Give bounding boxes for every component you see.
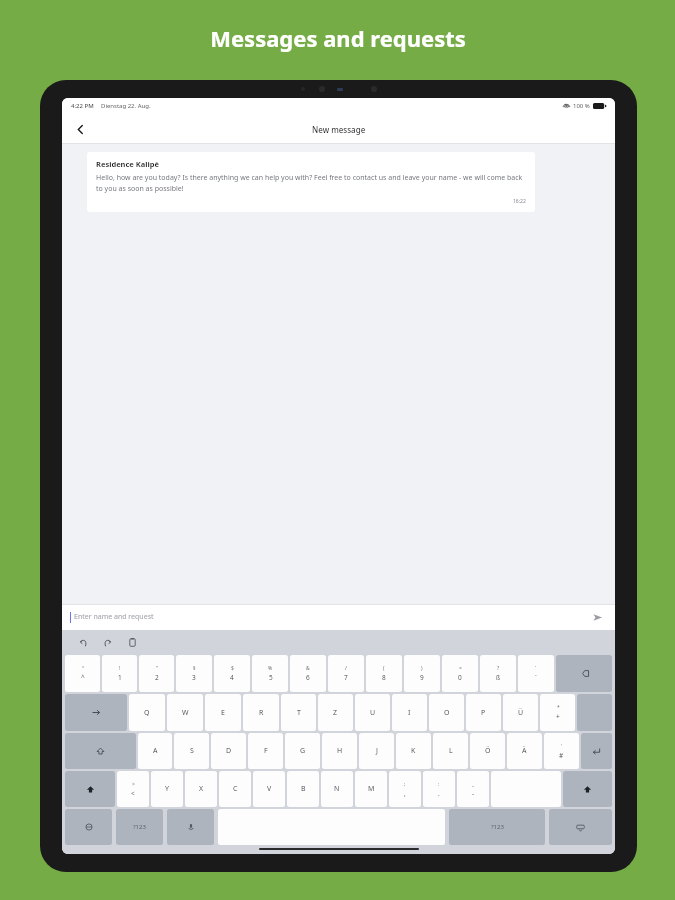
button[interactable]: ° [65, 655, 100, 692]
button[interactable]: ` [518, 655, 554, 692]
staticText: < [131, 789, 135, 798]
button[interactable]: V [253, 771, 285, 807]
button[interactable]: : [423, 771, 455, 807]
button[interactable]: Send [587, 607, 607, 627]
button[interactable]: = [442, 655, 478, 692]
staticText: 1 [118, 673, 122, 682]
button[interactable]: ( [366, 655, 402, 692]
button[interactable]: Caps lock [65, 733, 136, 769]
staticText: 6 [306, 673, 310, 682]
button[interactable]: * [540, 694, 575, 731]
button[interactable]: ?123 [116, 809, 163, 845]
button[interactable]: ? [480, 655, 516, 692]
button[interactable]: Q [129, 694, 165, 731]
staticText: Residence Kalipè [96, 159, 159, 169]
staticText: ' [561, 743, 563, 750]
staticText: K [411, 746, 416, 756]
staticText: . [438, 789, 440, 798]
button[interactable]: ! [102, 655, 137, 692]
button[interactable]: Back [68, 117, 92, 141]
button[interactable]: I [392, 694, 427, 731]
staticText: > [132, 781, 135, 788]
staticText: Y [165, 784, 169, 794]
staticText: J [376, 746, 378, 756]
staticText: $ [231, 665, 234, 672]
staticText: B [301, 784, 306, 794]
button[interactable]: F [248, 733, 283, 769]
staticText: W [182, 708, 189, 718]
button[interactable]: Ö [470, 733, 505, 769]
button[interactable]: ) [404, 655, 440, 692]
button[interactable]: ' [544, 733, 579, 769]
button[interactable]: U [355, 694, 390, 731]
staticText: G [300, 746, 306, 756]
button[interactable]: & [290, 655, 326, 692]
button[interactable]: N [321, 771, 353, 807]
button[interactable]: Undo [74, 633, 92, 651]
button[interactable]: Tab [65, 694, 127, 731]
staticText: 4 [230, 673, 234, 682]
staticText: " [156, 665, 159, 672]
button[interactable]: Voice input [167, 809, 214, 845]
button[interactable]: ; [389, 771, 421, 807]
button[interactable]: C [219, 771, 251, 807]
staticText: Messages and requests [210, 23, 466, 53]
button[interactable]: Backspace [556, 655, 612, 692]
button[interactable]: ?123 [449, 809, 545, 845]
button[interactable]: _ [457, 771, 489, 807]
button[interactable]: M [355, 771, 387, 807]
button[interactable]: O [429, 694, 464, 731]
button[interactable]: H [322, 733, 357, 769]
button[interactable]: " [139, 655, 174, 692]
button[interactable]: Paste [123, 633, 141, 651]
staticText: V [267, 784, 272, 794]
button[interactable]: Enter name and request [74, 612, 587, 622]
staticText: A [153, 746, 158, 756]
button[interactable]: Residence Kalipè [87, 152, 535, 212]
button[interactable]: R [243, 694, 279, 731]
button[interactable]: D [211, 733, 246, 769]
button[interactable]: > [117, 771, 149, 807]
staticText: New message [312, 124, 366, 135]
button[interactable]: S [174, 733, 209, 769]
button[interactable]: P [466, 694, 501, 731]
button[interactable]: A [138, 733, 172, 769]
button[interactable]: G [285, 733, 320, 769]
staticText: + [556, 712, 560, 721]
button[interactable]: L [433, 733, 468, 769]
staticText: - [472, 789, 475, 798]
button[interactable]: T [281, 694, 316, 731]
button[interactable]: K [396, 733, 431, 769]
staticText: ) [421, 665, 423, 672]
staticText: 5 [269, 673, 273, 682]
staticText: H [337, 746, 343, 756]
button[interactable]: Y [151, 771, 183, 807]
button[interactable]: Ä [507, 733, 542, 769]
button[interactable]: B [287, 771, 319, 807]
button[interactable]: Shift [563, 771, 612, 807]
staticText: ´ [535, 673, 537, 682]
button[interactable]: X [185, 771, 217, 807]
button[interactable]: J [359, 733, 394, 769]
button[interactable]: Z [318, 694, 353, 731]
button[interactable]: § [176, 655, 212, 692]
button[interactable]: Hide keyboard [549, 809, 612, 845]
button[interactable]: Ü [503, 694, 538, 731]
staticText: , [404, 789, 406, 798]
staticText: 7 [344, 673, 348, 682]
button[interactable]: E [205, 694, 241, 731]
staticText: U [370, 708, 376, 718]
button[interactable]: Redo [98, 633, 116, 651]
button[interactable]: Change keyboard [65, 809, 112, 845]
button[interactable]: % [252, 655, 288, 692]
button[interactable]: / [328, 655, 364, 692]
staticText: S [190, 746, 194, 756]
button[interactable]: Enter [581, 733, 612, 769]
staticText: Ä [522, 746, 527, 756]
button[interactable]: W [167, 694, 203, 731]
button[interactable]: Shift [65, 771, 115, 807]
button[interactable]: $ [214, 655, 250, 692]
